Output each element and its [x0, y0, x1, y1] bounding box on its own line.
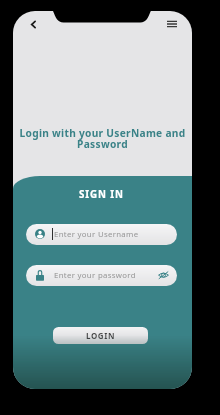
staticText: LOGIN [86, 330, 116, 341]
button[interactable]: Menu [164, 16, 180, 32]
button[interactable]: LOGIN [53, 327, 148, 344]
button[interactable]: Back [25, 16, 41, 32]
staticText: Login with your UserName and Password [15, 126, 190, 151]
button[interactable]: Enter your Username [26, 224, 177, 245]
staticText: Enter your password [54, 270, 136, 281]
staticText: SIGN IN [79, 188, 124, 201]
button[interactable]: Show password [157, 270, 169, 280]
button[interactable]: Enter your password [26, 265, 177, 286]
staticText: Enter your Username [54, 229, 139, 240]
